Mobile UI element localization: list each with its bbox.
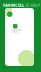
staticText: FARMCELL <box>3 2 24 8</box>
staticText: ID HELP <box>25 2 39 8</box>
